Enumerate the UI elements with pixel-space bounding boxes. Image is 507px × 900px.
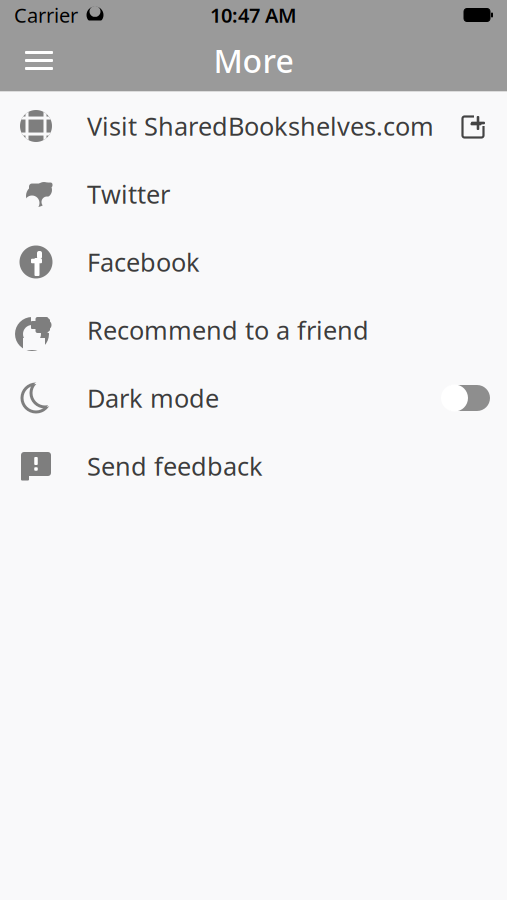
button[interactable]: Facebook xyxy=(0,228,507,296)
button[interactable]: Twitter xyxy=(0,160,507,228)
staticText: Twitter xyxy=(87,177,170,211)
staticText: Dark mode xyxy=(87,381,219,415)
staticText: More xyxy=(213,39,293,82)
staticText: Carrier xyxy=(14,2,78,28)
button[interactable]: Send feedback xyxy=(0,432,507,500)
staticText: 10:47 AM xyxy=(210,2,297,28)
button[interactable]: Recommend to a friend xyxy=(0,296,507,364)
staticText: Facebook xyxy=(87,245,200,279)
staticText: Recommend to a friend xyxy=(87,313,369,347)
staticText: Visit SharedBookshelves.com xyxy=(87,109,434,143)
button[interactable]: Dark mode xyxy=(441,384,491,412)
button[interactable]: Dark mode xyxy=(0,364,507,432)
button[interactable]: Open in browser xyxy=(457,109,491,143)
staticText: Send feedback xyxy=(87,449,263,483)
button[interactable]: Visit SharedBookshelves.com xyxy=(0,92,507,160)
button[interactable]: Menu xyxy=(10,36,68,84)
